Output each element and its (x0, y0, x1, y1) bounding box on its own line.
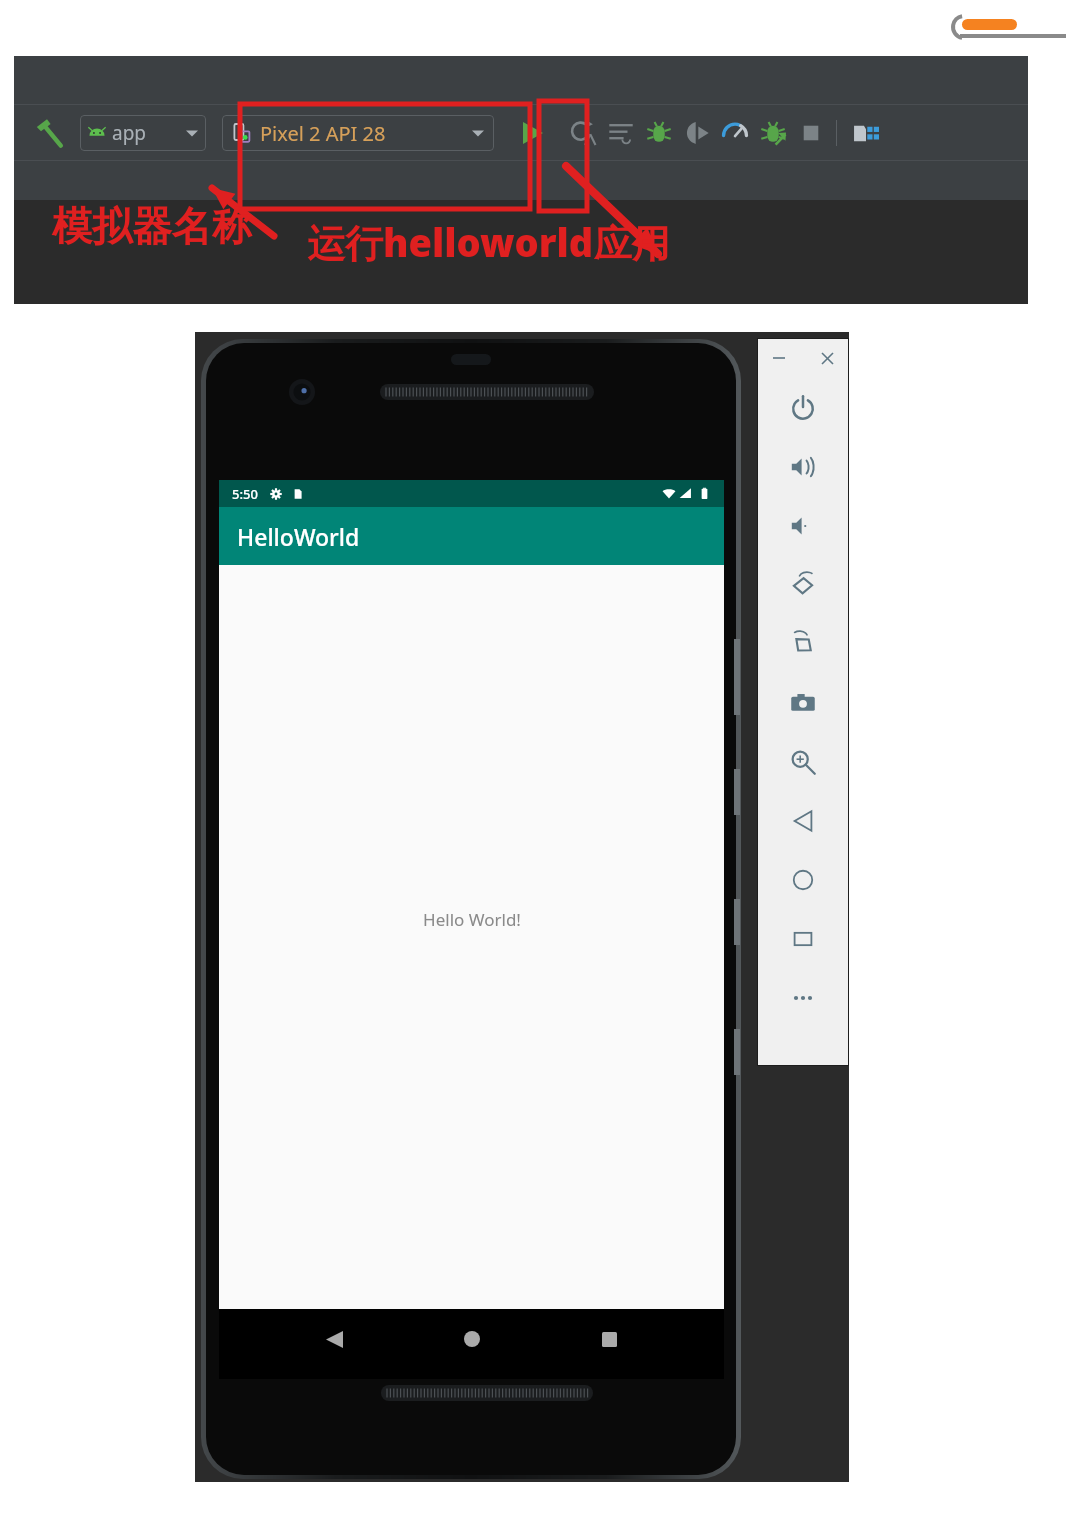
button[interactable]: SDK Manager (847, 114, 885, 152)
button[interactable]: Volume down (757, 496, 849, 555)
button[interactable]: Debug (640, 114, 678, 152)
button[interactable]: Minimize (766, 345, 792, 371)
button[interactable]: Back (757, 791, 849, 850)
staticText: helloworld (383, 216, 594, 268)
button[interactable]: Close (814, 345, 840, 371)
staticText: 5:50 (232, 485, 258, 503)
button[interactable]: Recents (586, 1316, 632, 1362)
button[interactable]: Rotate left (757, 555, 849, 614)
button[interactable]: app (80, 115, 206, 151)
button[interactable]: Screenshot (757, 673, 849, 732)
button[interactable]: Power (757, 378, 849, 437)
staticText: Pixel 2 API 28 (260, 120, 386, 147)
staticText: 运行 (307, 220, 383, 268)
button[interactable]: Run (514, 115, 550, 151)
button[interactable]: Overview (757, 909, 849, 968)
button[interactable]: Apply Changes (564, 114, 602, 152)
button[interactable]: More (757, 968, 849, 1027)
button[interactable]: Apply Code Changes (602, 114, 640, 152)
staticText: HelloWorld (237, 521, 360, 552)
button[interactable]: Rotate right (757, 614, 849, 673)
button[interactable]: Volume up (757, 437, 849, 496)
staticText: 应用 (594, 220, 670, 268)
button[interactable]: Stop (792, 114, 830, 152)
button[interactable]: Home (757, 850, 849, 909)
button[interactable]: Attach Debugger (678, 114, 716, 152)
button[interactable]: Profiler (716, 114, 754, 152)
button[interactable]: Build (30, 113, 70, 153)
staticText: Hello World! (423, 908, 521, 931)
button[interactable]: Zoom (757, 732, 849, 791)
button[interactable]: Back (311, 1316, 357, 1362)
button[interactable]: Home (449, 1316, 495, 1362)
staticText: 模拟器名称 (52, 201, 252, 251)
button[interactable]: Run with Coverage (754, 114, 792, 152)
staticText: app (112, 120, 147, 146)
button[interactable]: Pixel 2 API 28 (222, 115, 494, 151)
